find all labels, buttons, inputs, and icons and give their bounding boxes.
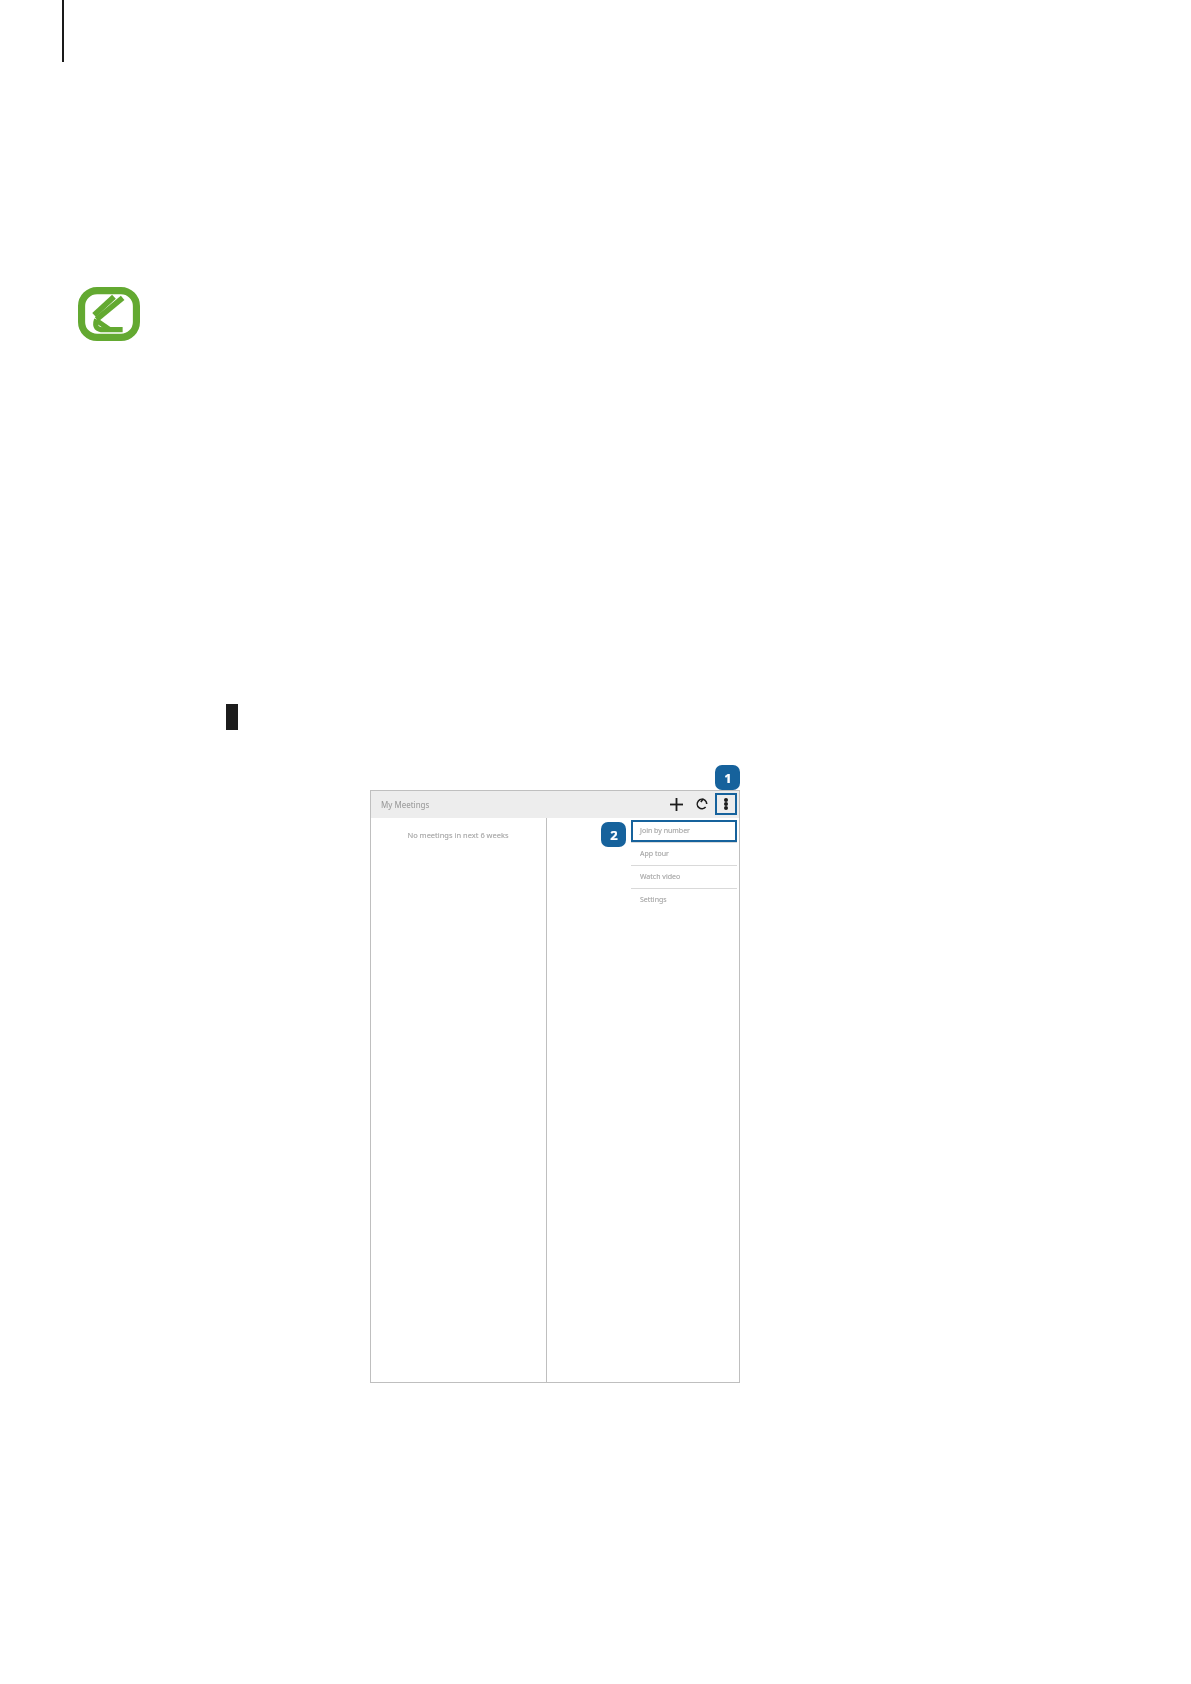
button[interactable]: Watch video [631,866,737,888]
staticText: Settings [640,895,667,905]
button[interactable]: New meeting [663,791,689,817]
staticText: 1 [724,769,732,787]
staticText: 2 [610,826,618,844]
staticText: No meetings in next 6 weeks [407,830,509,840]
staticText: Join by number [640,826,690,836]
button[interactable]: Settings [631,889,737,911]
staticText: My Meetings [381,799,430,810]
button[interactable]: Join by number [631,820,737,842]
staticText: Watch video [640,872,681,882]
button[interactable]: Refresh [689,791,715,817]
staticText: App tour [640,849,669,859]
button[interactable]: App tour [631,843,737,865]
button[interactable]: More options [715,793,737,815]
